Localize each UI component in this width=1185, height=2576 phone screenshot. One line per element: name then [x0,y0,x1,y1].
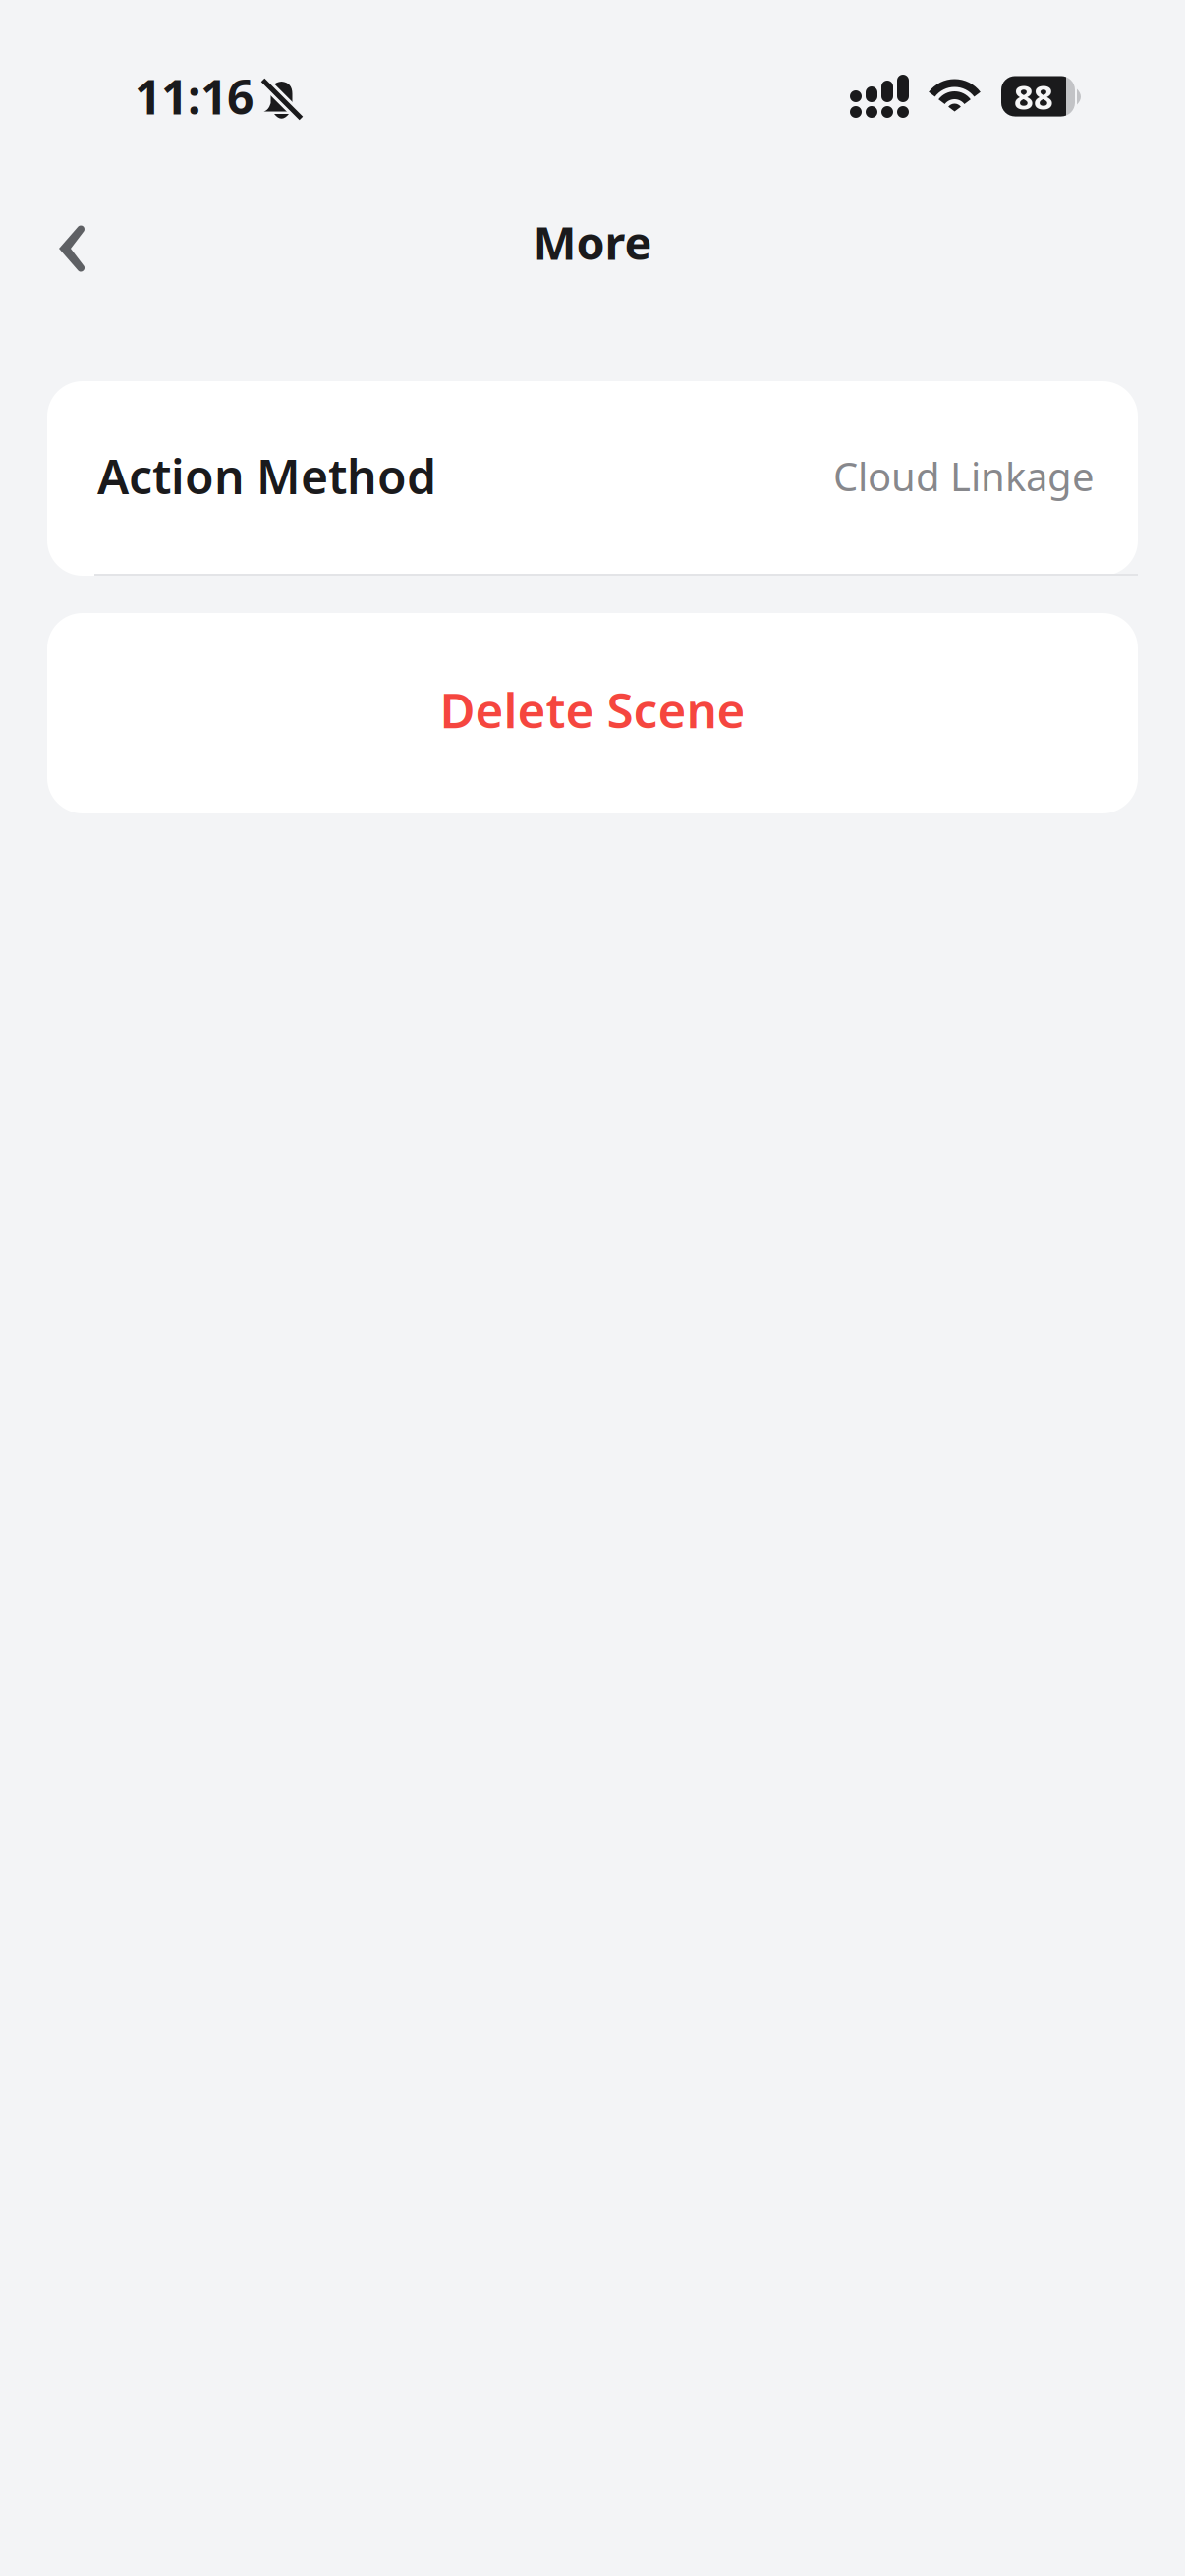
button[interactable]: Delete Scene [47,613,1138,813]
staticText: 88 [1014,74,1053,119]
button[interactable]: Back [21,191,139,309]
button[interactable]: Action Method [47,381,1138,576]
staticText: 11:16 [135,65,254,128]
staticText: Delete Scene [440,677,745,741]
staticText: Action Method [97,445,436,507]
staticText: Cloud Linkage [833,450,1095,502]
staticText: More [533,212,652,273]
